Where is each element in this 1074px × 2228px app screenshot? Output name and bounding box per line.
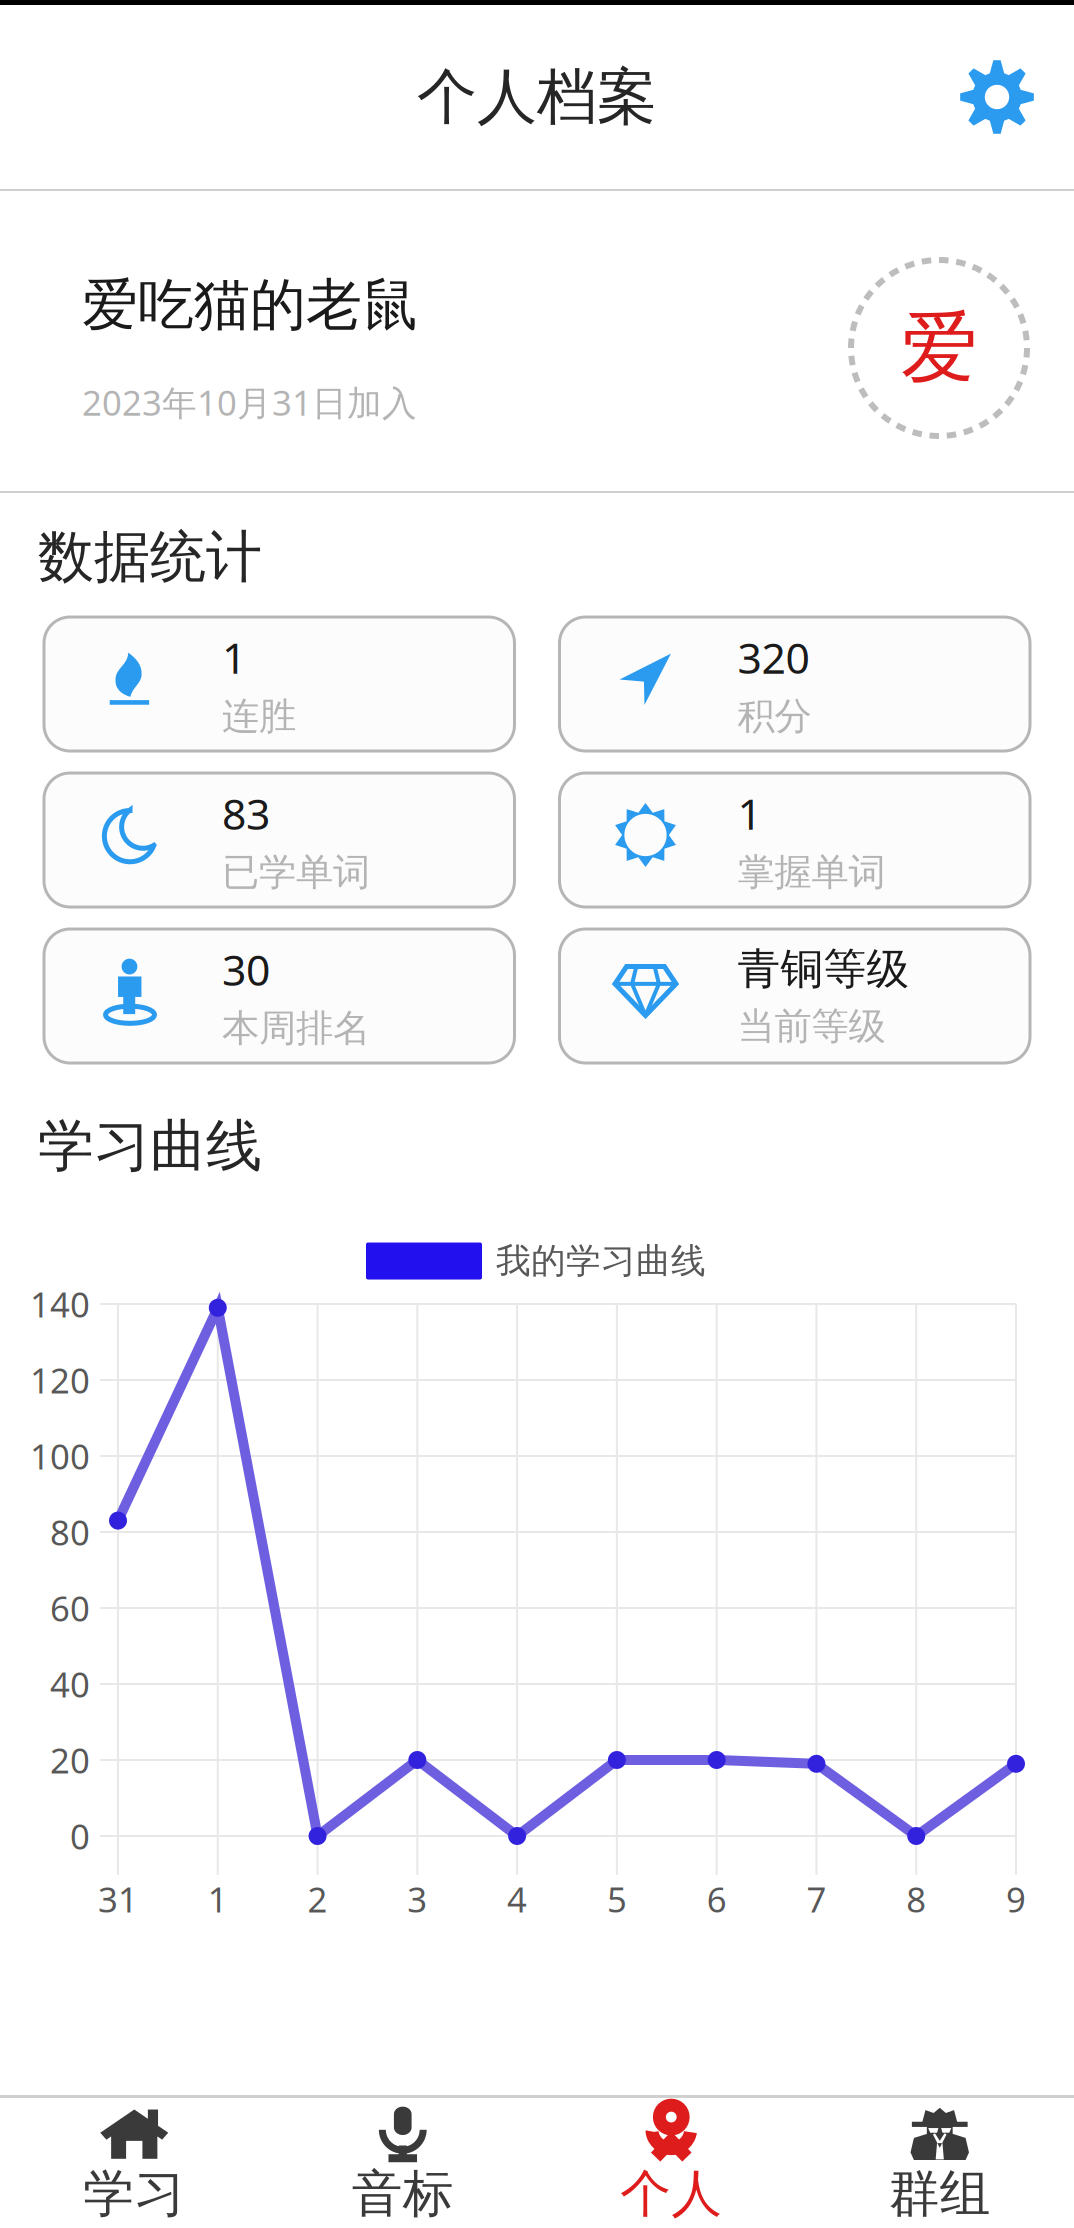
staticText: 连胜	[222, 693, 296, 739]
staticText: 5	[607, 1876, 627, 1922]
staticText: 80	[50, 1509, 90, 1555]
staticText: 青铜等级	[737, 943, 909, 995]
button[interactable]: 83	[44, 773, 514, 907]
staticText: 爱	[900, 300, 977, 395]
staticText: 31	[98, 1876, 138, 1922]
staticText: 3	[407, 1876, 427, 1922]
staticText: 音标	[352, 2163, 454, 2225]
button[interactable]: 320	[559, 617, 1030, 751]
button[interactable]: 学习	[0, 2098, 268, 2228]
staticText: 掌握单词	[737, 849, 885, 895]
staticText: 1	[737, 785, 761, 841]
staticText: 30	[222, 941, 270, 997]
staticText: 我的学习曲线	[496, 1240, 706, 1282]
staticText: 2	[308, 1876, 328, 1922]
staticText: 120	[30, 1357, 90, 1403]
button[interactable]: 30	[44, 929, 514, 1063]
staticText: 学习曲线	[38, 1112, 262, 1180]
button[interactable]: 群组	[805, 2098, 1074, 2228]
staticText: 140	[30, 1281, 90, 1327]
staticText: 60	[50, 1585, 90, 1631]
button[interactable]: 音标	[268, 2098, 537, 2228]
staticText: 83	[222, 785, 270, 841]
staticText: 个人	[620, 2163, 722, 2225]
staticText: 数据统计	[38, 523, 262, 591]
button[interactable]: 头像	[848, 257, 1030, 439]
staticText: 积分	[737, 693, 811, 739]
staticText: 爱吃猫的老鼠	[82, 271, 418, 339]
staticText: 本周排名	[222, 1005, 370, 1051]
staticText: 个人档案	[417, 60, 657, 134]
staticText: 8	[906, 1876, 926, 1922]
staticText: 20	[50, 1737, 90, 1783]
staticText: 2023年10月31日加入	[82, 379, 417, 425]
button[interactable]: 个人	[537, 2098, 805, 2228]
staticText: 6	[707, 1876, 727, 1922]
staticText: 7	[806, 1876, 826, 1922]
staticText: 40	[50, 1661, 90, 1707]
button[interactable]: 设置	[960, 60, 1034, 134]
staticText: 100	[30, 1433, 90, 1479]
staticText: 1	[208, 1876, 228, 1922]
staticText: 9	[1006, 1876, 1026, 1922]
button[interactable]: 1	[44, 617, 514, 751]
button[interactable]: 青铜等级	[559, 929, 1030, 1063]
staticText: 4	[507, 1876, 527, 1922]
staticText: 学习	[83, 2163, 185, 2225]
staticText: 1	[222, 629, 246, 685]
staticText: 0	[70, 1813, 90, 1859]
staticText: 当前等级	[737, 1003, 885, 1049]
staticText: 320	[737, 629, 809, 685]
button[interactable]: 1	[559, 773, 1030, 907]
staticText: 已学单词	[222, 849, 370, 895]
staticText: 群组	[889, 2163, 991, 2225]
